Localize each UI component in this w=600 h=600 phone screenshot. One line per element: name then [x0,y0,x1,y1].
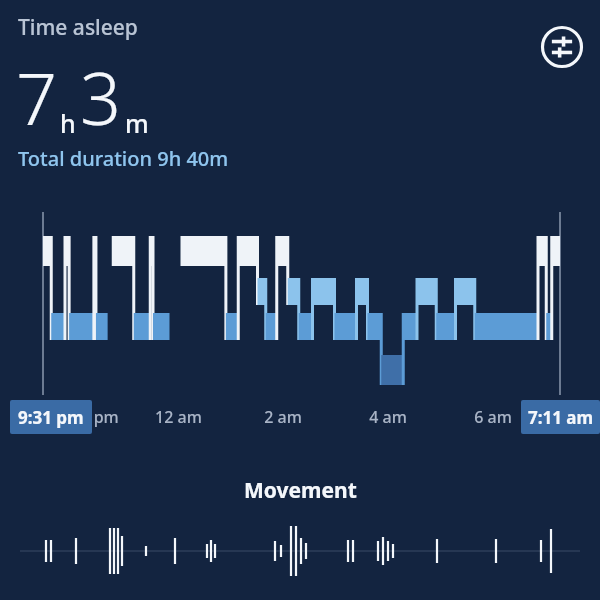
staticText: Movement [244,476,357,505]
button[interactable]: Adjust sleep settings [541,26,583,68]
staticText: m [125,106,149,140]
staticText: 7:11 am [528,406,594,429]
staticText: 9:31 pm [18,406,84,429]
staticText: Time asleep [18,13,138,42]
staticText: 7 [16,48,58,146]
staticText: 3 [80,48,122,146]
staticText: 4 am [369,406,407,428]
button[interactable]: 7:11 am [521,400,600,434]
staticText: h [60,106,76,140]
staticText: 2 am [264,406,302,428]
staticText: 12 am [155,406,202,428]
staticText: Total duration 9h 40m [18,145,229,172]
button[interactable]: 9:31 pm [10,400,92,434]
staticText: 6 am [474,406,512,428]
staticText: 10 pm [71,406,119,428]
